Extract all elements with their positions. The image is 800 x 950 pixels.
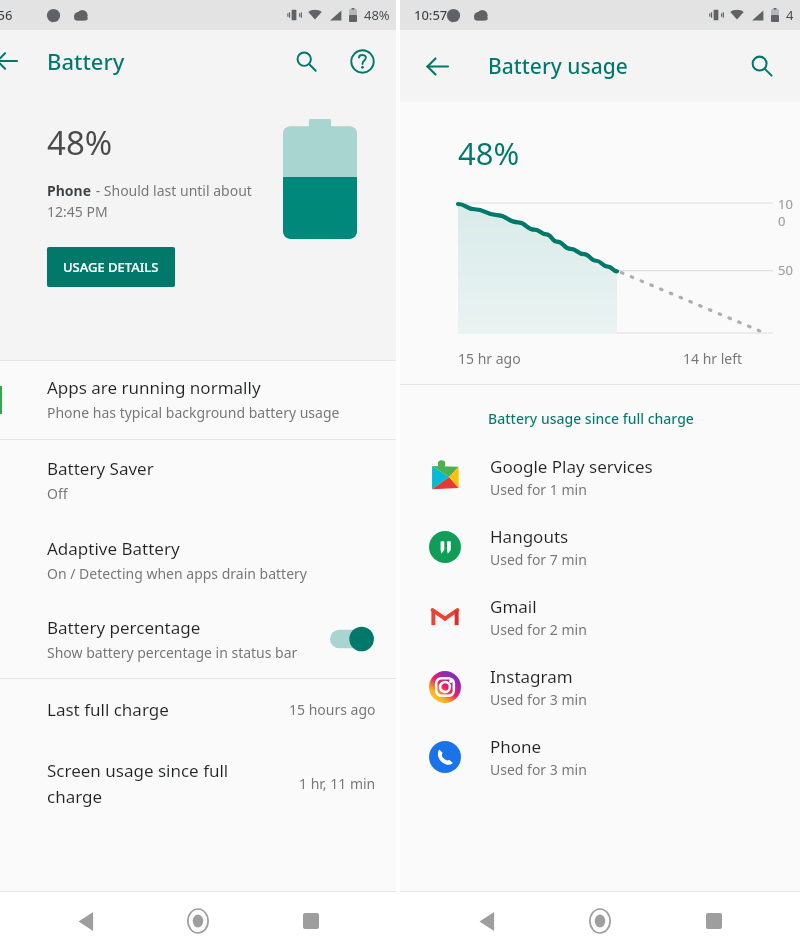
staticText: Instagram	[490, 665, 573, 688]
staticText: 1 hr, 11 min	[299, 774, 376, 793]
button[interactable]: Last full charge	[0, 679, 396, 740]
staticText: Apps are running normally	[47, 376, 261, 399]
staticText: Show battery percentage in status bar	[47, 643, 298, 662]
staticText: Battery usage	[488, 52, 628, 81]
staticText: 10:57	[414, 6, 448, 24]
staticText: Used for 2 min	[490, 620, 587, 639]
staticText: Off	[47, 484, 68, 503]
staticText: 12:45 PM	[47, 202, 108, 221]
button[interactable]: Help	[340, 39, 384, 83]
staticText: 50	[778, 261, 793, 279]
staticText: 48%	[47, 120, 113, 165]
staticText: :56	[0, 6, 13, 24]
staticText: USAGE DETAILS	[63, 258, 159, 276]
button[interactable]: Search	[284, 39, 328, 83]
staticText: Phone	[490, 735, 542, 758]
button[interactable]: Back	[59, 894, 113, 948]
staticText: Gmail	[490, 595, 537, 618]
button[interactable]: Gmail	[400, 582, 800, 652]
staticText: Used for 7 min	[490, 550, 587, 569]
button[interactable]: Search	[740, 44, 784, 88]
button[interactable]: Google Play services	[400, 442, 800, 512]
button[interactable]: Instagram	[400, 652, 800, 722]
button[interactable]: Adaptive Battery	[0, 520, 396, 600]
staticText: 14 hr left	[683, 349, 743, 368]
button[interactable]: Back	[460, 894, 514, 948]
staticText: On / Detecting when apps drain battery	[47, 564, 307, 583]
staticText: Last full charge	[47, 698, 275, 721]
staticText: 15 hours ago	[289, 700, 376, 719]
staticText: 15 hr ago	[458, 349, 521, 368]
staticText: Used for 3 min	[490, 690, 587, 709]
staticText: Adaptive Battery	[47, 537, 180, 560]
staticText: 4	[786, 6, 794, 24]
staticText: Google Play services	[490, 455, 653, 478]
button[interactable]: Battery percentage	[0, 600, 396, 678]
button[interactable]: Hangouts	[400, 512, 800, 582]
staticText: 48%	[364, 6, 390, 24]
staticText: Used for 1 min	[490, 480, 587, 499]
button[interactable]: Home	[171, 894, 225, 948]
button[interactable]: USAGE DETAILS	[47, 247, 175, 287]
staticText: 100	[778, 195, 800, 230]
button[interactable]: Navigate up	[0, 38, 30, 84]
staticText: 48%	[458, 132, 520, 174]
button[interactable]: Recents	[687, 894, 741, 948]
button[interactable]: Recents	[284, 894, 338, 948]
staticText: Hangouts	[490, 525, 569, 548]
button[interactable]: Back	[414, 43, 460, 89]
staticText: Phone has typical background battery usa…	[47, 403, 340, 422]
staticText: Battery Saver	[47, 457, 154, 480]
staticText: Battery percentage	[47, 616, 201, 639]
button[interactable]: Phone	[400, 722, 800, 792]
staticText: Used for 3 min	[490, 760, 587, 779]
button[interactable]: Battery Saver	[0, 440, 396, 520]
button[interactable]: Apps are running normally	[0, 361, 396, 439]
staticText: Battery	[47, 46, 125, 76]
staticText: Phone	[47, 181, 92, 200]
button[interactable]: Screen usage since full charge	[0, 740, 396, 827]
staticText: - Should last until about	[92, 181, 252, 200]
button[interactable]: Home	[573, 894, 627, 948]
staticText: Battery usage since full charge	[488, 409, 694, 428]
staticText: Screen usage since full charge	[47, 759, 237, 808]
